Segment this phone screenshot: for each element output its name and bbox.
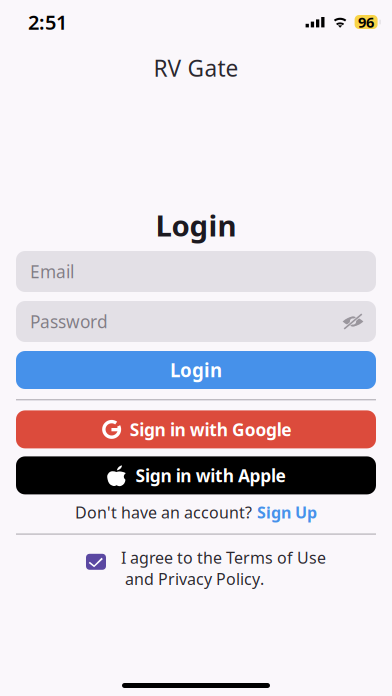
staticText: 2:51 <box>28 9 67 35</box>
staticText: Login <box>155 205 236 244</box>
staticText: I agree to the Terms of Use and Privacy … <box>121 547 326 589</box>
staticText: Password <box>30 310 108 333</box>
staticText: 96 <box>358 12 374 32</box>
button[interactable]: Sign Up <box>257 502 317 523</box>
button[interactable]: Login <box>16 351 376 389</box>
staticText: RV Gate <box>153 53 238 83</box>
staticText: Email <box>30 260 74 283</box>
button[interactable]: Sign in with Apple <box>16 456 376 494</box>
staticText: Sign in with Apple <box>135 464 286 487</box>
staticText: Sign in with Google <box>130 418 291 441</box>
button[interactable]: Show password <box>342 313 364 329</box>
staticText: Don't have an account? <box>75 502 252 523</box>
button[interactable]: I agree to the Terms of Use and Privacy … <box>76 547 316 589</box>
button[interactable]: Sign in with Google <box>16 410 376 448</box>
staticText: Sign Up <box>257 502 317 523</box>
staticText: Login <box>170 358 222 382</box>
